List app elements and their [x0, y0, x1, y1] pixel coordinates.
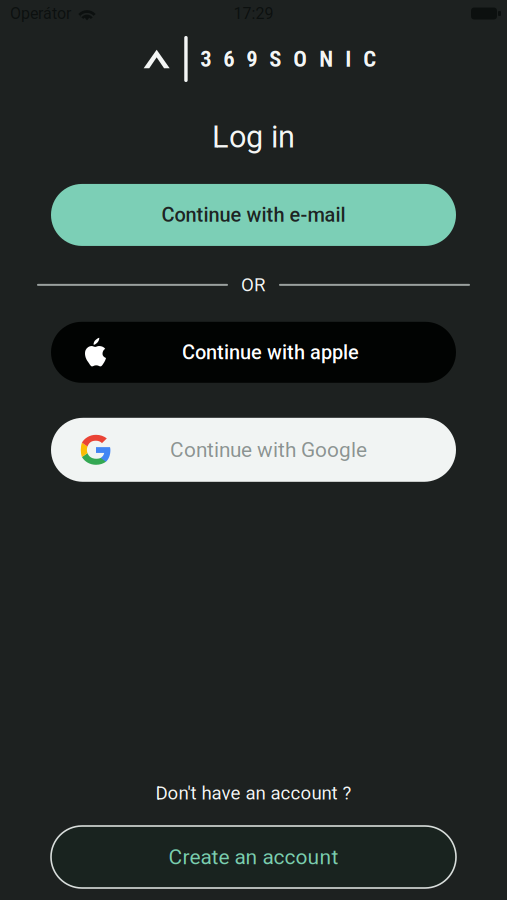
- button[interactable]: Create an account: [51, 826, 456, 888]
- staticText: Continue with e-mail: [161, 203, 345, 227]
- staticText: 369SONIC: [200, 46, 376, 72]
- staticText: Don't have an account ?: [155, 782, 351, 804]
- staticText: 17:29: [233, 4, 273, 23]
- staticText: Continue with Google: [170, 438, 367, 462]
- staticText: Operátor: [10, 4, 71, 23]
- staticText: Continue with apple: [182, 341, 359, 364]
- staticText: Create an account: [168, 845, 338, 869]
- button[interactable]: Continue with Google: [51, 418, 456, 482]
- staticText: Log in: [212, 119, 295, 155]
- staticText: OR: [241, 274, 266, 296]
- button[interactable]: Continue with apple: [51, 322, 456, 383]
- button[interactable]: Continue with e-mail: [51, 184, 456, 246]
